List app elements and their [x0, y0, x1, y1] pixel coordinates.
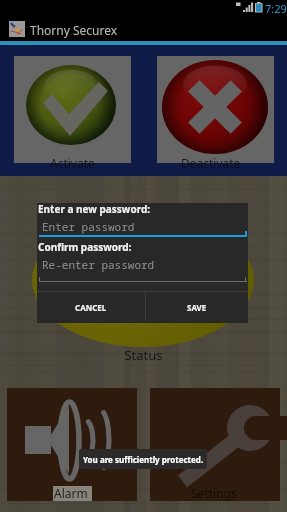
button[interactable]	[157, 56, 274, 163]
staticText: Deactivate	[181, 155, 241, 171]
button[interactable]: Settings	[150, 388, 280, 501]
button[interactable]: CANCEL	[37, 292, 145, 323]
staticText: 7:29	[265, 1, 287, 16]
staticText: Confirm password:	[38, 240, 132, 254]
staticText: You are sufficiently protected.	[83, 454, 204, 465]
staticText: Alarm	[54, 485, 88, 501]
button[interactable]: Alarm	[7, 388, 137, 501]
staticText: Activate	[50, 155, 95, 171]
staticText: CANCEL	[75, 302, 107, 313]
staticText: Settings	[191, 485, 237, 501]
staticText: Enter password	[42, 219, 135, 234]
staticText: Status	[0, 346, 287, 364]
staticText: Re-enter password	[42, 257, 155, 272]
staticText: Enter a new password:	[38, 202, 151, 216]
staticText: Thorny Securex	[30, 22, 118, 38]
staticText: SAVE	[187, 302, 207, 313]
button[interactable]: SAVE	[146, 292, 248, 323]
button[interactable]	[14, 56, 131, 163]
